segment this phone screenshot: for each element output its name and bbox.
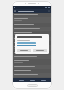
button[interactable] [41,80,46,81]
button[interactable]: Home [27,84,38,87]
button[interactable] [30,80,35,81]
button[interactable] [12,23,52,27]
button[interactable] [12,55,52,59]
button[interactable] [12,65,52,69]
button[interactable] [12,73,52,77]
button[interactable]: Text field [17,42,36,44]
button[interactable] [12,37,52,41]
button[interactable] [12,31,52,37]
button[interactable]: Navigate up [12,9,52,13]
button[interactable] [12,41,52,45]
button[interactable]: Navigate up [14,10,16,12]
button[interactable]: OK [33,49,47,52]
button[interactable] [12,59,52,65]
button[interactable] [12,78,52,82]
button[interactable] [19,80,24,81]
button[interactable] [12,17,52,23]
button[interactable] [12,27,52,31]
button[interactable] [12,51,52,55]
button[interactable] [12,13,52,17]
button[interactable] [12,45,52,51]
button[interactable]: Cancel [17,49,31,52]
button[interactable] [12,69,52,73]
